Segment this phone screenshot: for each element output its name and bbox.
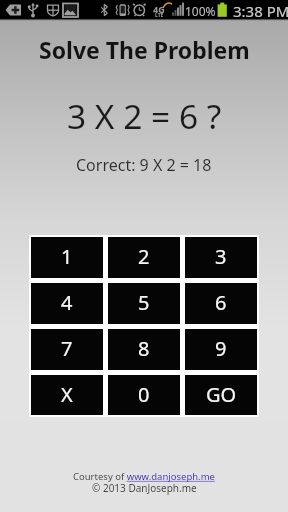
staticText: Correct: 9 X 2 = 18: [76, 154, 212, 176]
staticText: 1: [61, 243, 73, 270]
staticText: 8: [138, 335, 150, 362]
staticText: GO: [206, 381, 237, 408]
staticText: 6: [215, 289, 227, 316]
staticText: 3 X 2 = 6 ?: [67, 93, 222, 139]
staticText: X: [61, 381, 73, 408]
staticText: 3: [215, 243, 227, 270]
staticText: 3:38 PM: [233, 1, 288, 21]
staticText: 4: [61, 289, 73, 316]
staticText: © 2013 DanJoseph.me: [92, 481, 197, 495]
staticText: 4G: [153, 3, 165, 15]
staticText: Courtesy of www.danjoseph.me: [73, 470, 215, 483]
staticText: 5: [138, 289, 150, 316]
staticText: 2: [138, 243, 150, 270]
staticText: 0: [138, 381, 150, 408]
staticText: 9: [215, 335, 227, 362]
staticText: LTE: [155, 12, 164, 19]
staticText: 100%: [185, 3, 216, 19]
staticText: Solve The Problem: [39, 34, 250, 65]
staticText: 7: [61, 335, 73, 362]
